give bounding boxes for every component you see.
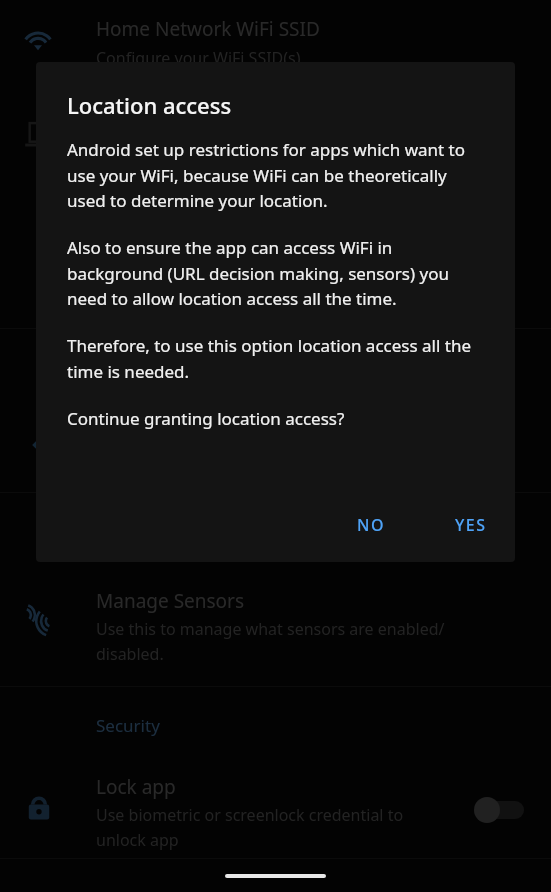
staticText: Security bbox=[96, 714, 160, 737]
staticText: Android set up restrictions for apps whi… bbox=[67, 138, 485, 212]
staticText: Use biometric or screenlock credential t… bbox=[96, 804, 404, 850]
button[interactable]: Sensors bbox=[0, 572, 551, 686]
button[interactable]: WiFi bbox=[0, 0, 551, 62]
button[interactable]: YES bbox=[443, 506, 499, 544]
staticText: Home Network WiFi SSID bbox=[96, 16, 320, 42]
staticText: Configure your WiFi SSID(s) bbox=[96, 47, 301, 69]
other: WiFi bbox=[20, 20, 56, 56]
staticText: Location access bbox=[67, 90, 232, 120]
staticText: Continue granting location access? bbox=[67, 407, 345, 430]
other: Sensors bbox=[22, 600, 56, 634]
staticText: Therefore, to use this option location a… bbox=[67, 334, 485, 383]
staticText: Also to ensure the app can access WiFi i… bbox=[67, 236, 485, 310]
staticText: Lock app bbox=[96, 774, 176, 800]
staticText: Manage Sensors bbox=[96, 588, 245, 614]
staticText: YES bbox=[455, 514, 487, 536]
staticText: Use this to manage what sensors are enab… bbox=[96, 618, 445, 664]
other: Lock bbox=[24, 792, 54, 822]
button[interactable]: Lock app toggle bbox=[474, 796, 528, 824]
button[interactable]: Lock bbox=[0, 764, 551, 858]
button[interactable]: NO bbox=[345, 506, 397, 544]
staticText: NO bbox=[357, 514, 385, 536]
